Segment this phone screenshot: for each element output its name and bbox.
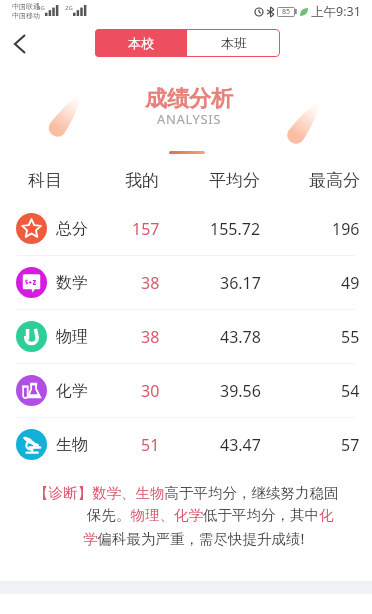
staticText: 中国移动 — [12, 11, 40, 20]
button[interactable]: 物理 — [0, 310, 372, 363]
staticText: 学偏科最为严重，需尽快提升成绩! — [83, 528, 305, 548]
staticText: 54 — [341, 380, 360, 402]
staticText: 196 — [332, 218, 360, 240]
staticText: 科目 — [28, 170, 62, 191]
staticText: 【诊断】数学、生物高于平均分，继续努力稳固 — [34, 484, 339, 502]
staticText: 36.17 — [220, 272, 261, 294]
button[interactable]: 化学 — [0, 364, 372, 417]
button[interactable]: 数学 — [0, 256, 372, 309]
staticText: 平均分 — [209, 170, 260, 191]
staticText: 49 — [341, 272, 360, 294]
staticText: 51 — [141, 434, 160, 456]
button[interactable]: 生物 — [0, 418, 372, 471]
staticText: 155.72 — [210, 218, 261, 240]
staticText: 55 — [341, 326, 360, 348]
staticText: 上午9:31 — [311, 3, 361, 20]
staticText: 中国联通 — [12, 2, 40, 11]
staticText: 最高分 — [309, 170, 360, 191]
staticText: 85 — [282, 7, 291, 17]
staticText: 2G — [65, 4, 73, 12]
staticText: 57 — [341, 434, 360, 456]
staticText: 本校 — [128, 35, 154, 51]
staticText: 本班 — [221, 35, 247, 51]
staticText: 化学 — [56, 381, 88, 401]
staticText: 成绩分析 — [3, 85, 372, 113]
staticText: 4G — [37, 4, 45, 12]
button[interactable]: 本校 — [95, 29, 187, 57]
staticText: 我的 — [125, 170, 159, 191]
staticText: 157 — [132, 218, 160, 240]
staticText: 39.56 — [220, 380, 261, 402]
button[interactable]: Back — [0, 25, 40, 63]
staticText: 物理 — [56, 327, 88, 347]
staticText: 总分 — [56, 219, 88, 239]
staticText: 38 — [141, 326, 160, 348]
staticText: ANALYSIS — [3, 110, 372, 128]
staticText: 保先。物理、化学低于平均分，其中化 — [87, 506, 334, 524]
staticText: 38 — [141, 272, 160, 294]
staticText: 生物 — [56, 435, 88, 455]
staticText: 43.78 — [220, 326, 261, 348]
button[interactable]: 总分 — [0, 202, 372, 255]
staticText: 30 — [141, 380, 160, 402]
button[interactable]: 本班 — [187, 29, 280, 57]
staticText: 43.47 — [220, 434, 261, 456]
staticText: 数学 — [56, 273, 88, 293]
